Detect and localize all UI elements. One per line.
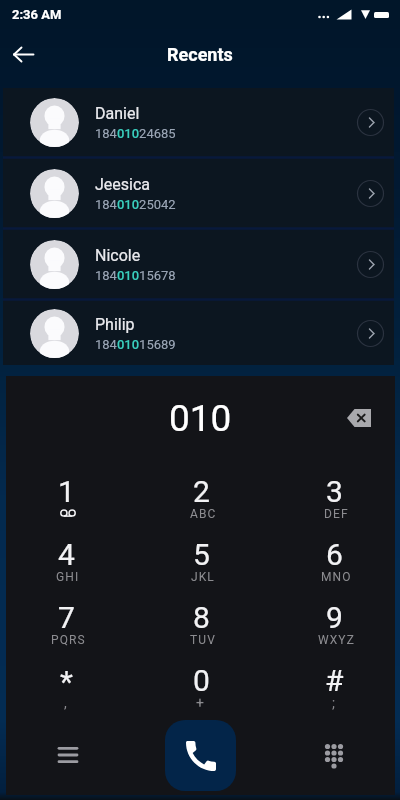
staticText: Jeesica — [95, 175, 151, 194]
staticText: 2 — [193, 474, 210, 509]
button[interactable]: Backspace — [340, 399, 378, 437]
staticText: 9 — [326, 600, 343, 635]
button[interactable]: Call — [165, 720, 236, 791]
button[interactable]: 1 — [6, 473, 126, 536]
staticText: ; — [332, 695, 337, 711]
staticText: 6 — [326, 537, 343, 572]
button[interactable]: * — [6, 662, 126, 725]
staticText: 18401015678 — [95, 268, 176, 283]
staticText: Daniel — [95, 104, 140, 123]
button[interactable]: Call details — [350, 102, 390, 142]
staticText: + — [196, 695, 206, 711]
staticText: # — [325, 663, 344, 698]
button[interactable]: Keypad — [312, 734, 356, 778]
staticText: 1 — [58, 474, 75, 509]
staticText: PQRS — [51, 633, 86, 647]
staticText: , — [64, 695, 68, 711]
button[interactable]: # — [274, 662, 394, 725]
button[interactable]: Call details — [350, 244, 390, 284]
staticText: MNO — [321, 570, 352, 584]
staticText: JKL — [191, 570, 215, 584]
staticText: 18401015689 — [95, 337, 176, 352]
button[interactable]: Back — [7, 38, 39, 70]
staticText: 2:36 AM — [12, 7, 62, 22]
button[interactable]: Jeesica — [3, 159, 394, 227]
staticText: ABC — [190, 507, 217, 521]
staticText: * — [60, 664, 73, 699]
staticText: WXYZ — [318, 633, 355, 647]
staticText: 0 — [193, 663, 210, 698]
staticText: GHI — [56, 570, 80, 584]
staticText: 18401025042 — [95, 197, 176, 212]
staticText: 3 — [326, 474, 343, 509]
button[interactable]: Menu — [46, 733, 90, 777]
button[interactable]: Call details — [350, 173, 390, 213]
staticText: Nicole — [95, 246, 141, 265]
button[interactable]: 3 — [274, 473, 394, 536]
staticText: 5 — [193, 537, 210, 572]
button[interactable]: 7 — [6, 599, 126, 662]
button[interactable]: 2 — [141, 473, 261, 536]
button[interactable]: Daniel — [3, 88, 394, 156]
staticText: 7 — [58, 600, 75, 635]
staticText: Recents — [167, 44, 233, 65]
button[interactable]: 4 — [6, 536, 126, 599]
button[interactable]: 0 — [141, 662, 261, 725]
staticText: 18401024685 — [95, 126, 176, 141]
button[interactable]: Philip — [3, 301, 394, 365]
button[interactable]: Call details — [350, 313, 390, 353]
staticText: 8 — [193, 600, 210, 635]
button[interactable]: 9 — [274, 599, 394, 662]
button[interactable]: Nicole — [3, 230, 394, 298]
staticText: 010 — [169, 397, 232, 440]
staticText: DEF — [324, 507, 349, 521]
staticText: Philip — [95, 315, 135, 334]
staticText: 4 — [58, 537, 75, 572]
button[interactable]: 6 — [274, 536, 394, 599]
staticText: TUV — [190, 633, 216, 647]
button[interactable]: 8 — [141, 599, 261, 662]
button[interactable]: 5 — [141, 536, 261, 599]
